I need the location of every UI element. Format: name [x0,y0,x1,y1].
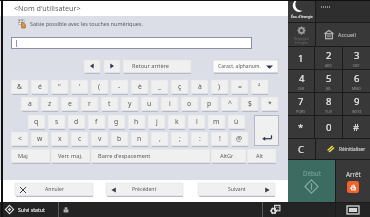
button[interactable]: 8 [315,93,342,115]
button[interactable]: Précédent [106,183,183,197]
button[interactable]: o [181,97,198,112]
button[interactable]: d [68,115,85,130]
staticText: 7 [298,95,304,108]
button[interactable]: ù [228,115,245,130]
staticText: é [38,82,42,91]
staticText: 5 [326,72,332,85]
button[interactable]: Curseur gauche [84,60,100,74]
button[interactable]: ( [91,80,108,95]
button[interactable]: w [31,132,48,147]
button[interactable]: ^ [221,97,238,112]
button[interactable]: Entrée [255,116,278,145]
button[interactable]: ' [71,80,88,95]
button[interactable]: l [188,115,205,130]
staticText: & [17,82,22,91]
button[interactable]: Accueil [316,23,370,46]
button[interactable]: Paramètres [263,202,288,217]
button[interactable]: f [88,115,105,130]
button[interactable]: n [131,132,148,147]
button[interactable]: m [208,115,225,130]
button[interactable]: j [148,115,165,130]
button[interactable]: ! [211,132,228,147]
button[interactable]: 6 [343,70,370,92]
button[interactable]: k [168,115,185,130]
staticText: Maj [18,152,28,160]
button[interactable]: b [111,132,128,147]
button[interactable]: Maj [11,149,50,164]
button[interactable]: 9 [343,93,370,115]
staticText: Réglages/ [294,36,310,40]
button[interactable]: q [28,115,45,130]
staticText: $ [248,99,252,108]
button[interactable]: " [51,80,68,95]
button[interactable]: 0 [315,116,342,138]
button[interactable]: Début [288,160,335,202]
button[interactable]: - [111,80,128,95]
staticText: g [114,117,119,126]
button[interactable]: Suivant [198,183,275,197]
button[interactable]: & [11,80,28,95]
button[interactable]: c [71,132,88,147]
button[interactable]: r [81,97,98,112]
button[interactable]: e [61,97,78,112]
button[interactable]: v [91,132,108,147]
button[interactable]: Éco. d'énergie [288,1,315,22]
staticText: GHI [298,86,305,91]
button[interactable]: $ [241,97,258,112]
button[interactable]: s [48,115,65,130]
staticText: Saisie possible avec les touches numériq… [30,20,143,27]
button[interactable]: 5 [315,70,342,92]
button[interactable]: # [343,116,370,138]
button[interactable]: @ [231,132,248,147]
button[interactable]: 2 [315,47,342,69]
button[interactable]: Compteur [336,203,370,217]
button[interactable]: Verr. maj. [51,149,90,164]
staticText: f [95,117,98,126]
button[interactable]: C [288,139,315,159]
button[interactable]: Réglages/ [288,23,315,46]
button[interactable]: 4 [288,70,314,92]
button[interactable]: _ [151,80,168,95]
button[interactable]: ² [251,80,268,95]
button[interactable]: Caract. alphanum. [213,60,278,74]
button[interactable]: AltGr [211,149,246,164]
button[interactable]: * [261,97,278,112]
button[interactable]: t [101,97,118,112]
button[interactable]: à [191,80,208,95]
button[interactable]: x [51,132,68,147]
button[interactable]: , [151,132,168,147]
staticText: ^ [228,99,232,108]
button[interactable]: Arrêt [336,160,370,202]
staticText: # [353,121,360,134]
button[interactable]: 3 [343,47,370,69]
button[interactable]: é [31,80,48,95]
button[interactable]: Barre d'espacement [91,149,210,164]
button[interactable]: ; [171,132,188,147]
button[interactable]: 7 [288,93,314,115]
button[interactable] [12,38,251,48]
button[interactable]: 1 [288,47,314,69]
button[interactable]: Réinitialiser [316,139,370,159]
button[interactable]: ) [211,80,228,95]
button[interactable]: ç [171,80,188,95]
button[interactable]: Retour arrière [123,60,191,74]
button[interactable]: Imprimer [59,202,73,217]
button[interactable]: è [131,80,148,95]
button[interactable]: g [108,115,125,130]
button[interactable]: z [41,97,58,112]
button[interactable]: p [201,97,218,112]
button[interactable]: Curseur droite [104,60,120,74]
staticText: ABC [325,63,332,68]
button[interactable]: u [141,97,158,112]
button[interactable]: h [128,115,145,130]
button[interactable]: a [21,97,38,112]
button[interactable]: Alt [247,149,276,164]
button[interactable]: * [288,116,314,138]
button[interactable]: = [231,80,248,95]
button[interactable]: Suivi statut [0,202,58,217]
button[interactable]: y [121,97,138,112]
button[interactable]: Annuler [15,183,93,197]
button[interactable]: < [11,132,28,147]
button[interactable]: i [161,97,178,112]
button[interactable]: : [191,132,208,147]
